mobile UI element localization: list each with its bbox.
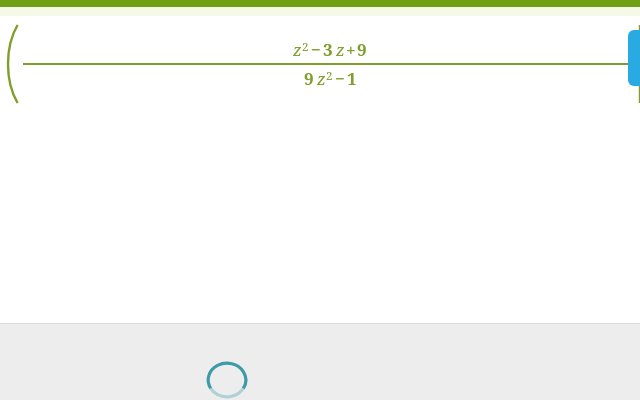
staticText: − [335,67,345,90]
staticText: 2 [302,39,309,55]
staticText: z [293,38,302,61]
staticText: 2 [326,68,333,84]
staticText: z [317,67,326,90]
staticText: + [346,38,356,61]
staticText: 9 [304,67,314,90]
staticText: − [311,38,321,61]
staticText: 9 [357,38,367,61]
staticText: 3 [323,38,333,61]
staticText: z [336,38,345,61]
button[interactable]: Open panel [628,30,640,86]
staticText: 1 [347,67,357,90]
